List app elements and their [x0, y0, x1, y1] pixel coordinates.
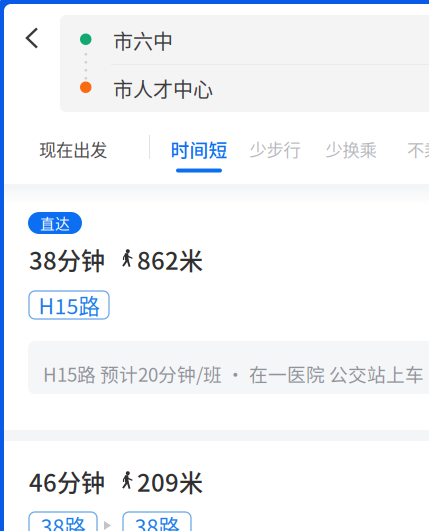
- button[interactable]: 时间短: [159, 130, 239, 178]
- button[interactable]: 直达: [28, 212, 82, 234]
- staticText: 209米: [137, 464, 203, 499]
- staticText: 现在出发: [39, 136, 107, 162]
- staticText: 少换乘: [325, 136, 376, 162]
- staticText: 38路: [40, 511, 85, 531]
- staticText: 少步行: [249, 136, 300, 162]
- button[interactable]: 38路: [123, 512, 191, 531]
- staticText: H15路 预计20分钟/班 · 在一医院 公交站上车: [43, 360, 424, 387]
- staticText: 直达: [40, 212, 70, 234]
- staticText: 时间短: [170, 135, 227, 162]
- button[interactable]: 现在出发: [23, 129, 123, 169]
- button[interactable]: H15路: [29, 291, 109, 319]
- staticText: 38分钟: [29, 242, 105, 277]
- button[interactable]: 少换乘: [321, 129, 381, 169]
- staticText: 不乘地铁: [407, 136, 429, 162]
- staticText: 市人才中心: [113, 74, 213, 103]
- button[interactable]: Edit route endpoints: [60, 15, 429, 112]
- staticText: H15路: [38, 290, 99, 320]
- button[interactable]: 少步行: [245, 129, 305, 169]
- staticText: 862米: [137, 242, 203, 277]
- staticText: 46分钟: [29, 464, 105, 499]
- button[interactable]: Back: [10, 16, 54, 60]
- button[interactable]: 不乘地铁: [407, 129, 429, 169]
- staticText: 38路: [134, 511, 179, 531]
- staticText: 市六中: [113, 26, 173, 55]
- button[interactable]: 38路: [29, 512, 97, 531]
